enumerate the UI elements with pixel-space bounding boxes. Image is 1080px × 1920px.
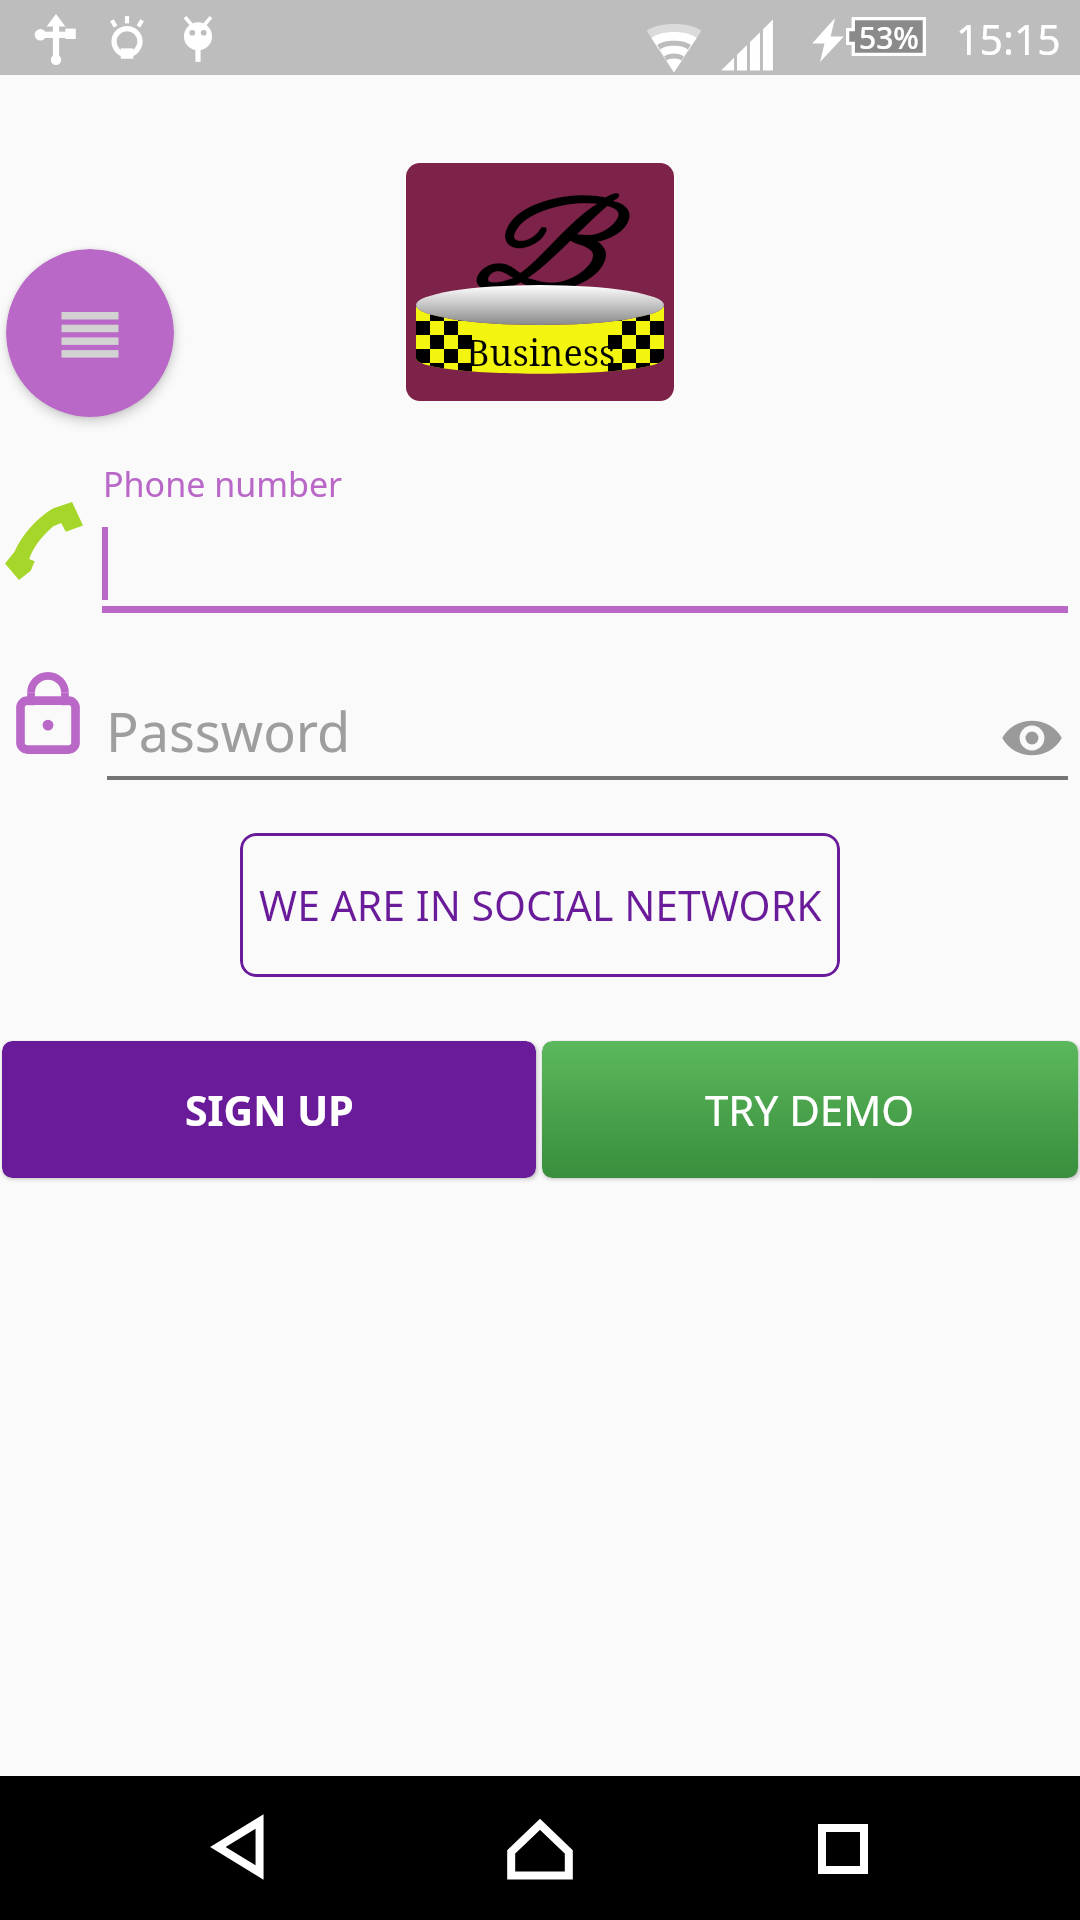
staticText: 15:15 <box>956 11 1061 67</box>
staticText: SIGN UP <box>185 1082 354 1138</box>
button[interactable]: Show password <box>1001 707 1063 769</box>
staticText: Business <box>466 328 616 377</box>
button[interactable]: Home <box>508 1818 572 1882</box>
staticText: 53% <box>859 17 919 56</box>
button[interactable]: TRY DEMO <box>542 1041 1078 1178</box>
staticText: Phone number <box>103 461 343 507</box>
staticText: B <box>473 191 591 331</box>
button[interactable]: SIGN UP <box>2 1041 536 1178</box>
button[interactable]: Recent apps <box>818 1824 868 1874</box>
button[interactable]: WE ARE IN SOCIAL NETWORK <box>240 833 840 977</box>
button[interactable]: Back <box>212 1818 270 1876</box>
staticText: WE ARE IN SOCIAL NETWORK <box>259 877 822 933</box>
staticText: Password <box>106 694 351 768</box>
button[interactable]: Menu <box>6 249 174 417</box>
staticText: TRY DEMO <box>705 1081 915 1138</box>
